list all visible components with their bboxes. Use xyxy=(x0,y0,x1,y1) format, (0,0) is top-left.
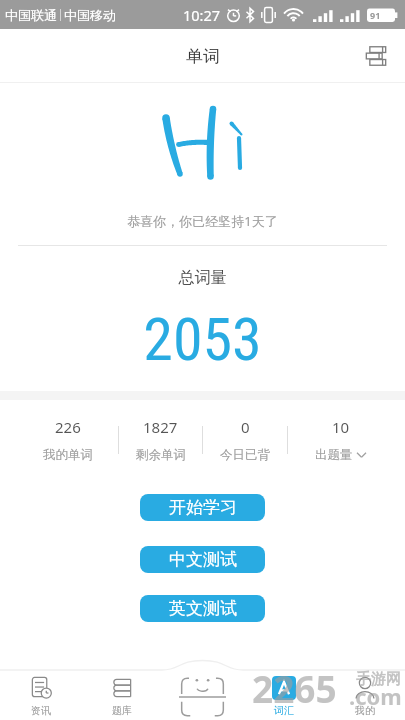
staticText: 2265 xyxy=(252,663,337,713)
button[interactable]: 0 xyxy=(203,414,287,466)
button[interactable]: 词汇 xyxy=(243,659,324,720)
staticText: 91 xyxy=(370,9,381,21)
staticText: 手游网 xyxy=(356,670,401,689)
button[interactable]: Books xyxy=(355,35,397,77)
button[interactable]: 1827 xyxy=(119,414,202,466)
button[interactable]: 10 xyxy=(288,414,393,466)
staticText: 英文测试 xyxy=(169,598,237,619)
staticText: 恭喜你，你已经坚持1天了 xyxy=(0,212,405,230)
staticText: 今日已背 xyxy=(220,447,270,463)
staticText: .com xyxy=(349,681,402,711)
staticText: 226 xyxy=(55,417,81,437)
button[interactable]: 开始学习 xyxy=(140,494,265,521)
staticText: 0 xyxy=(241,417,250,437)
button[interactable]: 226 xyxy=(17,414,118,466)
staticText: 题库 xyxy=(112,704,132,717)
staticText: 1827 xyxy=(143,417,178,437)
staticText: 我的 xyxy=(355,704,375,717)
staticText: 资讯 xyxy=(31,704,51,717)
staticText: 10:27 xyxy=(183,5,221,25)
staticText: 中国移动 xyxy=(64,7,116,23)
staticText: 2053 xyxy=(0,304,405,374)
button[interactable]: 资讯 xyxy=(0,659,81,720)
staticText: 出题量 xyxy=(315,447,353,463)
staticText: 词汇 xyxy=(274,704,294,717)
staticText: 总词量 xyxy=(0,268,405,288)
staticText: 中文测试 xyxy=(169,549,237,570)
staticText: 开始学习 xyxy=(169,497,237,518)
button[interactable]: 英文测试 xyxy=(140,595,265,622)
staticText: 我的单词 xyxy=(43,447,93,463)
staticText: 剩余单词 xyxy=(136,447,186,463)
button[interactable]: 题库 xyxy=(81,659,162,720)
staticText: 单词 xyxy=(186,46,220,67)
button[interactable]: Scan xyxy=(162,659,243,720)
staticText: 10 xyxy=(332,417,350,437)
button[interactable]: 中文测试 xyxy=(140,546,265,573)
button[interactable]: 我的 xyxy=(324,659,405,720)
staticText: 中国联通 xyxy=(5,7,57,23)
